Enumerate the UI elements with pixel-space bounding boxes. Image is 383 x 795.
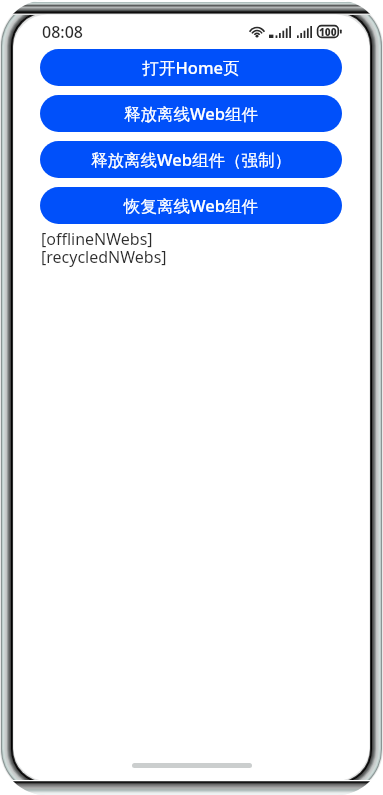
button[interactable]: 释放离线Web组件 bbox=[40, 95, 342, 132]
staticText: 100 bbox=[319, 25, 337, 38]
staticText: 打开Home页 bbox=[142, 56, 240, 79]
button[interactable]: 打开Home页 bbox=[40, 49, 342, 86]
button[interactable]: 恢复离线Web组件 bbox=[40, 187, 342, 224]
staticText: 08:08 bbox=[42, 21, 83, 43]
button[interactable]: 释放离线Web组件（强制） bbox=[40, 141, 342, 178]
staticText: 恢复离线Web组件 bbox=[124, 194, 258, 217]
staticText: 释放离线Web组件 bbox=[124, 102, 258, 125]
staticText: 释放离线Web组件（强制） bbox=[91, 148, 291, 171]
staticText: [offlineNWebs] [recycledNWebs] bbox=[41, 228, 167, 267]
